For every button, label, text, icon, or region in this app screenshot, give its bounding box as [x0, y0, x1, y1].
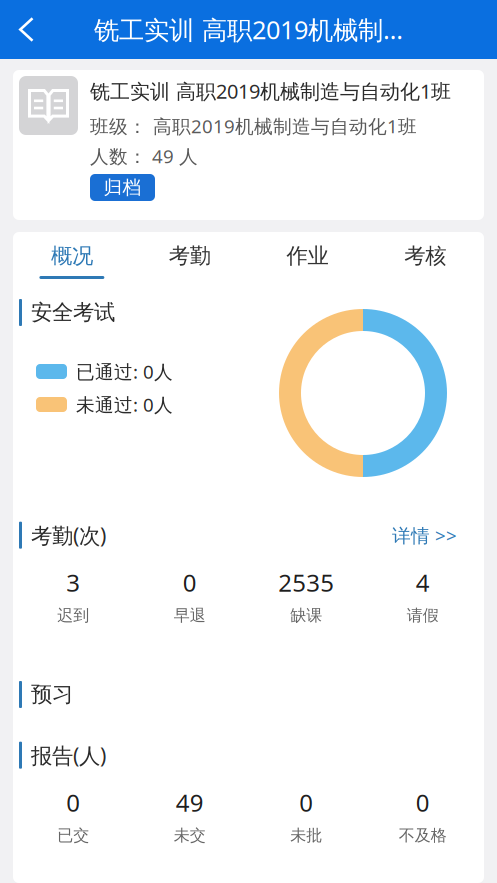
staticText: 不及格: [399, 825, 447, 845]
button[interactable]: Back: [0, 0, 50, 59]
staticText: 未批: [290, 825, 322, 845]
button[interactable]: 概况: [13, 232, 131, 279]
staticText: 2535: [278, 566, 334, 598]
staticText: 0: [416, 786, 430, 818]
staticText: 迟到: [57, 605, 89, 625]
staticText: 考勤(次): [31, 521, 106, 549]
button[interactable]: 考核: [366, 232, 484, 279]
staticText: 未交: [174, 825, 206, 845]
button[interactable]: 详情 >>: [392, 523, 457, 548]
staticText: 3: [66, 566, 80, 598]
staticText: 概况: [51, 243, 93, 269]
staticText: 请假: [407, 605, 439, 625]
staticText: 班级： 高职2019机械制造与自动化1班: [90, 114, 417, 138]
staticText: 安全考试: [31, 299, 115, 326]
staticText: 0: [183, 566, 197, 598]
staticText: 0: [66, 786, 80, 818]
button[interactable]: 归档: [90, 174, 155, 201]
staticText: 报告(人): [31, 741, 106, 769]
staticText: 归档: [103, 176, 141, 199]
staticText: 人数： 49 人: [90, 144, 198, 168]
staticText: 考核: [404, 243, 446, 269]
staticText: 缺课: [290, 605, 322, 625]
staticText: 铣工实训 高职2019机械制造与自动化1班: [90, 78, 451, 104]
button[interactable]: 考勤: [131, 232, 249, 279]
staticText: 0: [299, 786, 313, 818]
staticText: 49: [176, 786, 204, 818]
staticText: 详情 >>: [392, 523, 457, 548]
staticText: 未通过: 0人: [76, 392, 173, 417]
staticText: 已交: [57, 825, 89, 845]
staticText: 已通过: 0人: [76, 359, 173, 384]
staticText: 考勤: [169, 243, 211, 269]
staticText: 预习: [31, 681, 73, 708]
staticText: 作业: [286, 243, 328, 269]
staticText: 铣工实训 高职2019机械制…: [94, 13, 403, 46]
button[interactable]: 作业: [248, 232, 366, 279]
staticText: 4: [416, 566, 430, 598]
staticText: 早退: [174, 605, 206, 625]
